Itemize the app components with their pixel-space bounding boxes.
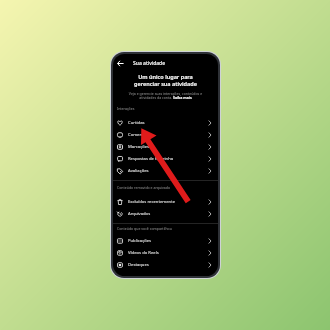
button[interactable]: Curtidas xyxy=(113,117,218,129)
staticText: Conteúdo removido e arquivado xyxy=(117,185,171,190)
staticText: Sua atividade xyxy=(133,60,166,67)
staticText: Um único lugar para gerenciar sua ativid… xyxy=(118,73,213,87)
staticText: Excluídos recentemente xyxy=(128,199,207,205)
button[interactable]: Vídeos do Reels xyxy=(113,247,218,259)
button[interactable]: Respostas de figurinha xyxy=(113,153,218,165)
staticText: Veja e gerencie suas interações, conteúd… xyxy=(117,91,214,100)
staticText: Avaliações xyxy=(128,168,207,174)
staticText: Conteúdo que você compartilhou xyxy=(117,226,172,231)
button[interactable]: Comentários xyxy=(113,129,218,141)
staticText: Interações xyxy=(117,106,135,111)
staticText: Arquivados xyxy=(128,211,207,217)
button[interactable]: Excluídos recentemente xyxy=(113,196,218,208)
staticText: Destaques xyxy=(128,262,207,268)
button[interactable]: Arquivados xyxy=(113,208,218,220)
staticText: Curtidas xyxy=(128,120,207,126)
staticText: Comentários xyxy=(128,132,207,138)
button[interactable]: Publicações xyxy=(113,235,218,247)
staticText: Respostas de figurinha xyxy=(128,156,207,162)
button[interactable]: Destaques xyxy=(113,259,218,271)
staticText: Marcações xyxy=(128,144,207,150)
staticText: Vídeos do Reels xyxy=(128,250,207,256)
staticText: Publicações xyxy=(128,238,207,244)
button[interactable]: Marcações xyxy=(113,141,218,153)
button[interactable]: Avaliações xyxy=(113,165,218,177)
button[interactable]: Back xyxy=(116,59,125,68)
